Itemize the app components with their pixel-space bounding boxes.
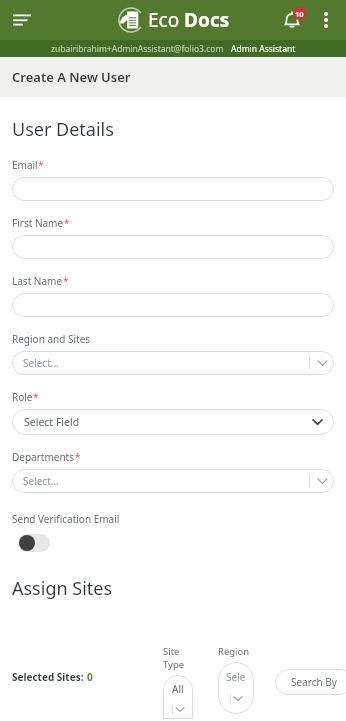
staticText: *: [63, 274, 69, 288]
staticText: Select...: [23, 356, 59, 370]
staticText: *: [33, 390, 39, 404]
staticText: All: [172, 682, 184, 696]
staticText: Select...: [23, 474, 59, 488]
staticText: Admin Assistant: [231, 43, 296, 55]
staticText: Selected Sites:: [12, 670, 87, 684]
button[interactable]: Notifications, 10 unread: [276, 4, 308, 36]
staticText: 10: [295, 9, 304, 19]
button[interactable]: Sele: [218, 662, 254, 714]
staticText: zubairibrahim+AdminAssistant@folio3.com: [51, 43, 224, 55]
staticText: User Details: [12, 117, 114, 142]
staticText: *: [38, 158, 44, 172]
staticText: Assign Sites: [12, 576, 113, 601]
staticText: 0: [87, 670, 93, 684]
staticText: Region: [218, 645, 250, 658]
staticText: Create A New User: [12, 68, 131, 86]
staticText: First Name: [12, 216, 64, 230]
staticText: Sele: [226, 670, 246, 684]
button[interactable]: Select...: [12, 351, 334, 375]
button[interactable]: Open navigation menu: [6, 4, 38, 36]
button[interactable]: Select Field: [12, 409, 334, 435]
button[interactable]: [12, 293, 334, 317]
staticText: Eco Docs: [148, 7, 230, 33]
button[interactable]: Select...: [12, 469, 334, 493]
staticText: Send Verification Email: [12, 512, 120, 526]
staticText: Departments: [12, 450, 75, 464]
staticText: *: [75, 450, 81, 464]
button[interactable]: zubairibrahim+AdminAssistant@folio3.com: [0, 40, 346, 57]
button[interactable]: All: [163, 675, 193, 719]
staticText: Site: [163, 645, 180, 658]
staticText: Region and Sites: [12, 332, 91, 346]
staticText: Role: [12, 390, 33, 404]
staticText: Search By: [291, 675, 337, 689]
button[interactable]: Search By: [275, 669, 346, 695]
staticText: *: [64, 216, 70, 230]
button[interactable]: Send verification email toggle, off: [18, 534, 50, 552]
button[interactable]: More options: [311, 5, 341, 35]
staticText: Email: [12, 158, 38, 172]
staticText: Type: [163, 658, 185, 671]
staticText: Last Name: [12, 274, 63, 288]
button[interactable]: [12, 177, 334, 201]
button[interactable]: [12, 235, 334, 259]
staticText: Select Field: [24, 415, 80, 429]
